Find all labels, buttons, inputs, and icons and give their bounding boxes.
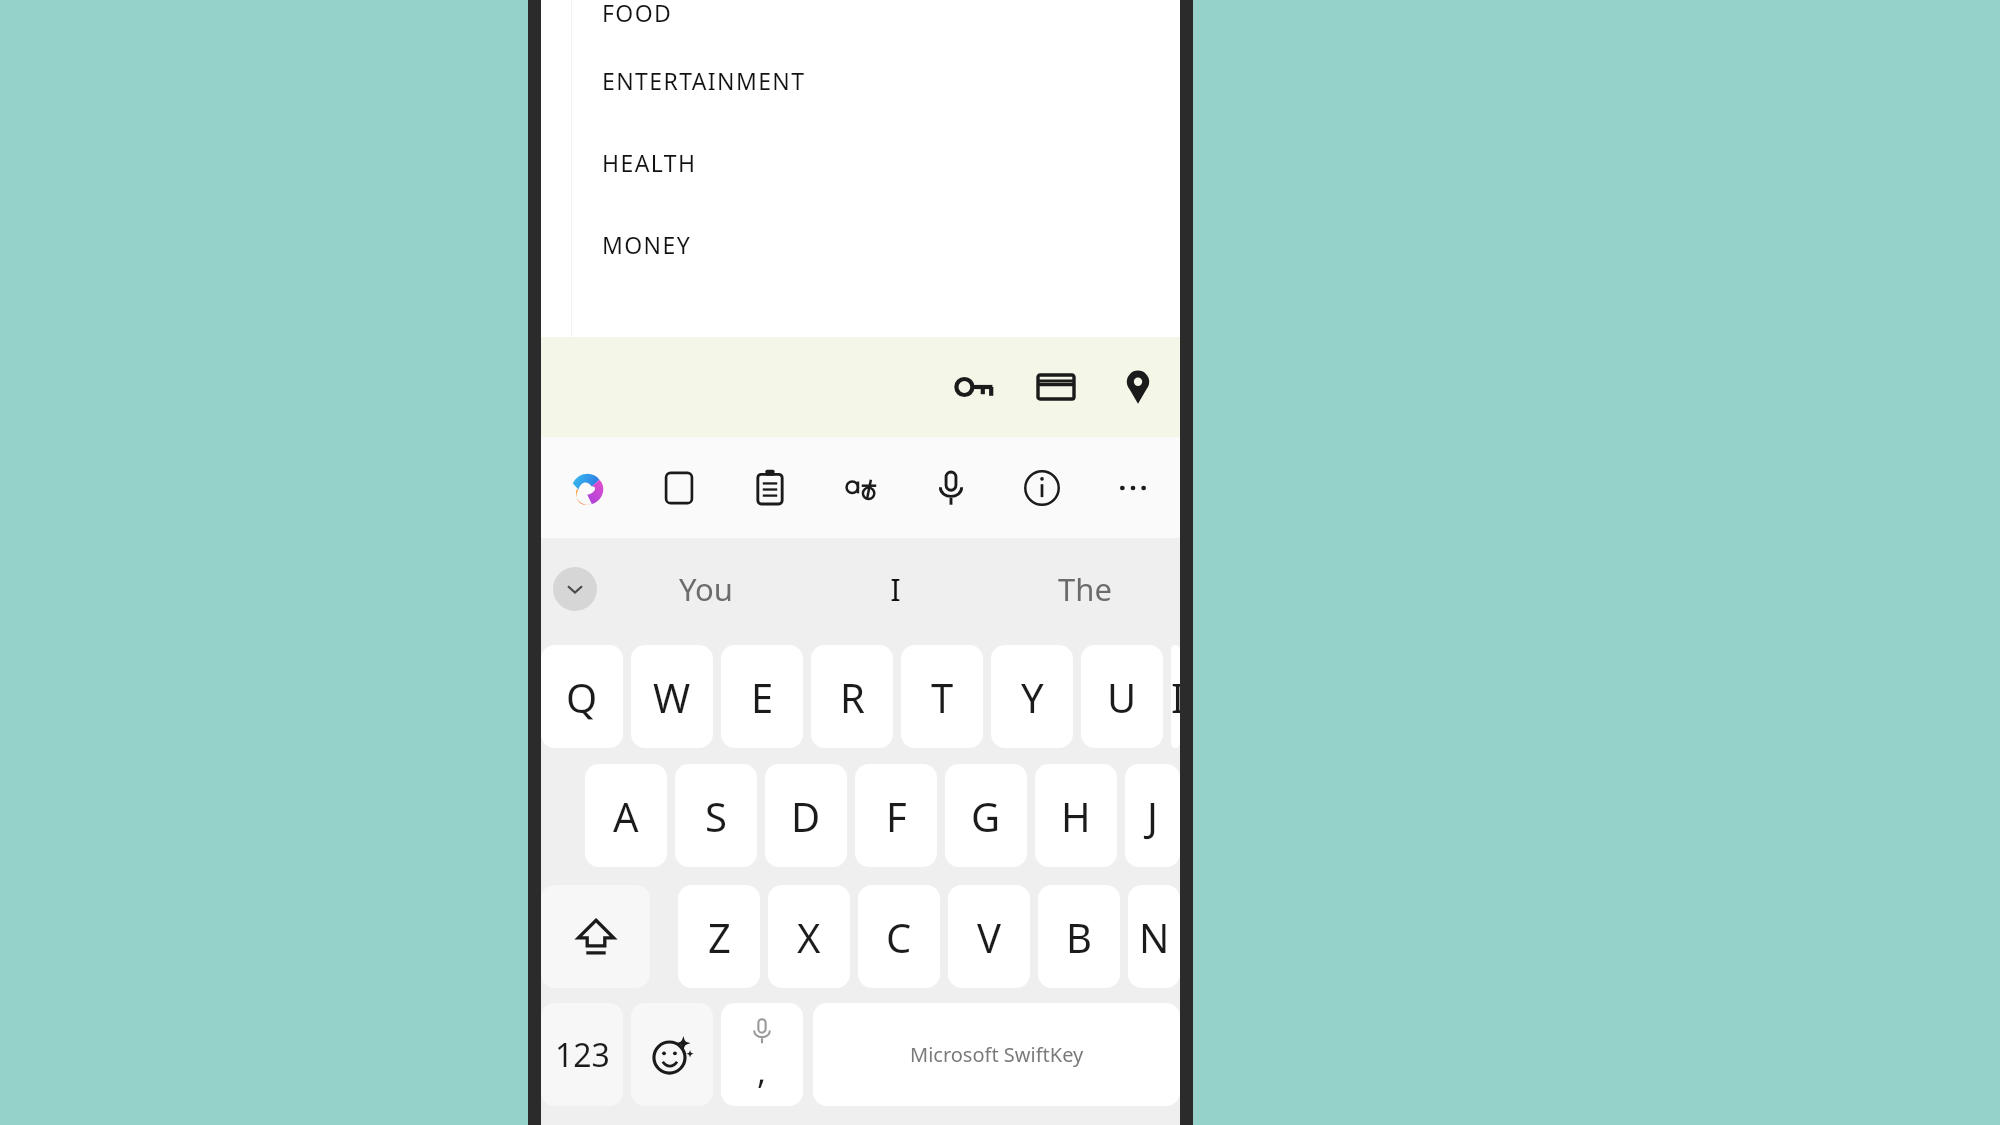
staticText: T — [931, 670, 954, 724]
button[interactable]: Numbers — [541, 1003, 623, 1106]
staticText: V — [977, 910, 1001, 964]
staticText: I — [890, 568, 901, 610]
button[interactable]: C — [858, 885, 940, 988]
button[interactable]: You — [611, 538, 800, 640]
button[interactable]: E — [721, 645, 803, 748]
button[interactable]: A — [585, 764, 667, 867]
staticText: U — [1107, 670, 1137, 724]
button[interactable]: B — [1038, 885, 1120, 988]
staticText: The — [1058, 568, 1112, 610]
staticText: Microsoft SwiftKey — [910, 1041, 1084, 1068]
staticText: 123 — [555, 1033, 610, 1077]
button[interactable]: S — [675, 764, 757, 867]
button[interactable]: Clipboard — [737, 455, 803, 521]
staticText: N — [1139, 910, 1170, 964]
button[interactable]: U — [1081, 645, 1163, 748]
button[interactable]: H — [1035, 764, 1117, 867]
button[interactable]: Comma and voice input — [721, 1003, 803, 1106]
button[interactable]: D — [765, 764, 847, 867]
staticText: Q — [566, 670, 598, 724]
button[interactable]: GIF — [646, 455, 712, 521]
staticText: HEALTH — [602, 147, 697, 178]
staticText: H — [1061, 789, 1091, 843]
button[interactable]: Z — [678, 885, 760, 988]
staticText: Y — [1021, 670, 1044, 724]
staticText: X — [797, 910, 821, 964]
staticText: You — [679, 568, 733, 610]
button[interactable]: I — [1171, 645, 1180, 748]
staticText: C — [886, 910, 912, 964]
button[interactable]: Collapse toolbar — [553, 567, 597, 611]
button[interactable]: Info — [1009, 455, 1075, 521]
button[interactable]: T — [901, 645, 983, 748]
button[interactable]: Copilot — [555, 455, 621, 521]
staticText: G — [971, 789, 1001, 843]
button[interactable]: J — [1125, 764, 1180, 867]
staticText: Z — [708, 910, 731, 964]
button[interactable]: Emoji — [631, 1003, 713, 1106]
button[interactable]: MONEY — [602, 216, 1241, 272]
staticText: S — [705, 789, 727, 843]
button[interactable]: Passwords — [940, 353, 1008, 421]
staticText: , — [757, 1048, 767, 1094]
staticText: FOOD — [602, 0, 673, 28]
staticText: B — [1066, 910, 1092, 964]
button[interactable]: Q — [541, 645, 623, 748]
staticText: W — [653, 670, 691, 724]
button[interactable]: Space — [813, 1003, 1180, 1106]
button[interactable]: Addresses — [1104, 353, 1172, 421]
button[interactable]: Voice input — [918, 455, 984, 521]
staticText: I — [1171, 670, 1180, 724]
button[interactable]: The — [990, 538, 1180, 640]
staticText: R — [840, 670, 865, 724]
staticText: MONEY — [602, 229, 692, 260]
button[interactable]: Shift — [541, 885, 650, 988]
button[interactable]: Y — [991, 645, 1073, 748]
button[interactable]: ENTERTAINMENT — [602, 52, 1241, 108]
staticText: D — [791, 789, 821, 843]
staticText: F — [886, 789, 907, 843]
button[interactable]: I — [800, 538, 990, 640]
button[interactable]: G — [945, 764, 1027, 867]
button[interactable]: Payment cards — [1022, 353, 1090, 421]
button[interactable]: V — [948, 885, 1030, 988]
button[interactable]: More options — [1100, 455, 1166, 521]
button[interactable]: N — [1128, 885, 1180, 988]
button[interactable]: HEALTH — [602, 134, 1241, 190]
staticText: A — [613, 789, 639, 843]
staticText: J — [1147, 789, 1158, 843]
button[interactable]: R — [811, 645, 893, 748]
button[interactable]: X — [768, 885, 850, 988]
button[interactable]: FOOD — [602, 0, 1241, 40]
button[interactable]: Translate — [828, 455, 894, 521]
button[interactable]: F — [855, 764, 937, 867]
button[interactable]: W — [631, 645, 713, 748]
staticText: E — [751, 670, 774, 724]
staticText: ENTERTAINMENT — [602, 65, 806, 96]
